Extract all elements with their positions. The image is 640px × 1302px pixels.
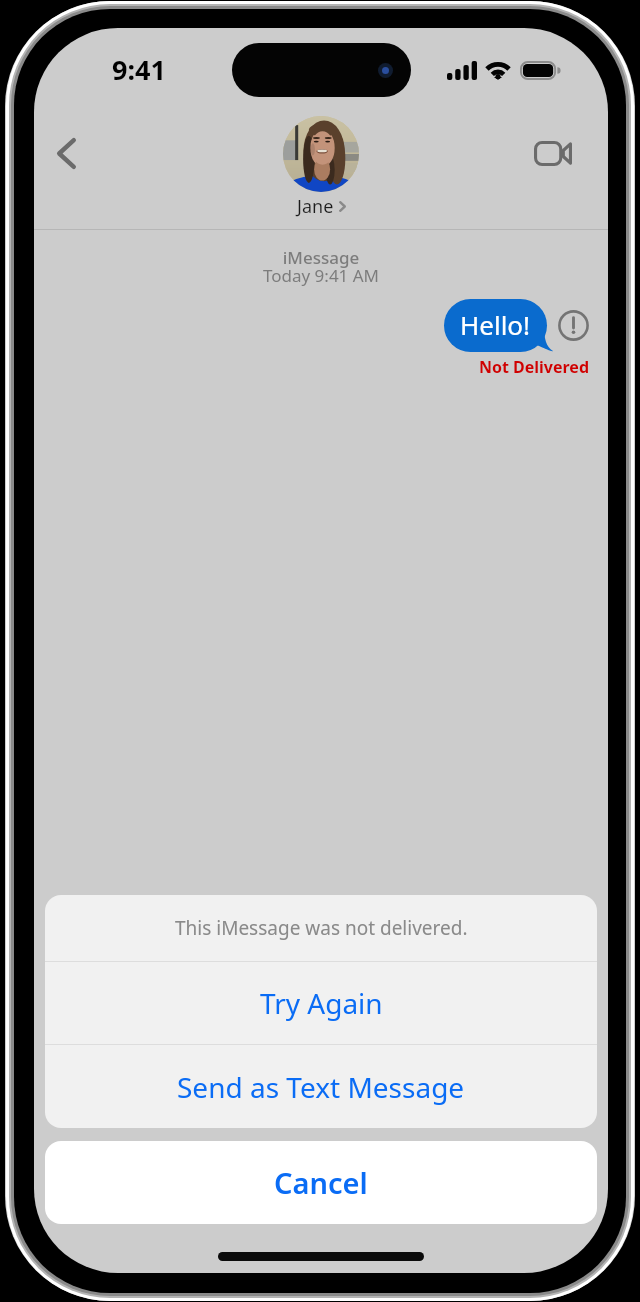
staticText: iMessage — [34, 246, 608, 269]
button[interactable]: Cancel — [45, 1141, 597, 1224]
staticText: Hello! — [460, 307, 531, 342]
button[interactable]: Back — [37, 124, 95, 182]
staticText: Cancel — [274, 1163, 368, 1202]
button[interactable]: Send as Text Message — [45, 1045, 597, 1128]
staticText: Jane — [297, 194, 334, 219]
staticText: This iMessage was not delivered. — [175, 915, 468, 941]
button[interactable]: Jane — [283, 116, 359, 219]
button[interactable]: Try Again — [45, 962, 597, 1044]
staticText: 9:41 — [112, 51, 166, 88]
staticText: Today 9:41 AM — [34, 264, 608, 287]
staticText: Not Delivered — [34, 356, 589, 378]
button[interactable]: FaceTime video call — [525, 125, 581, 181]
staticText: Send as Text Message — [177, 1068, 465, 1106]
staticText: Try Again — [260, 984, 383, 1022]
